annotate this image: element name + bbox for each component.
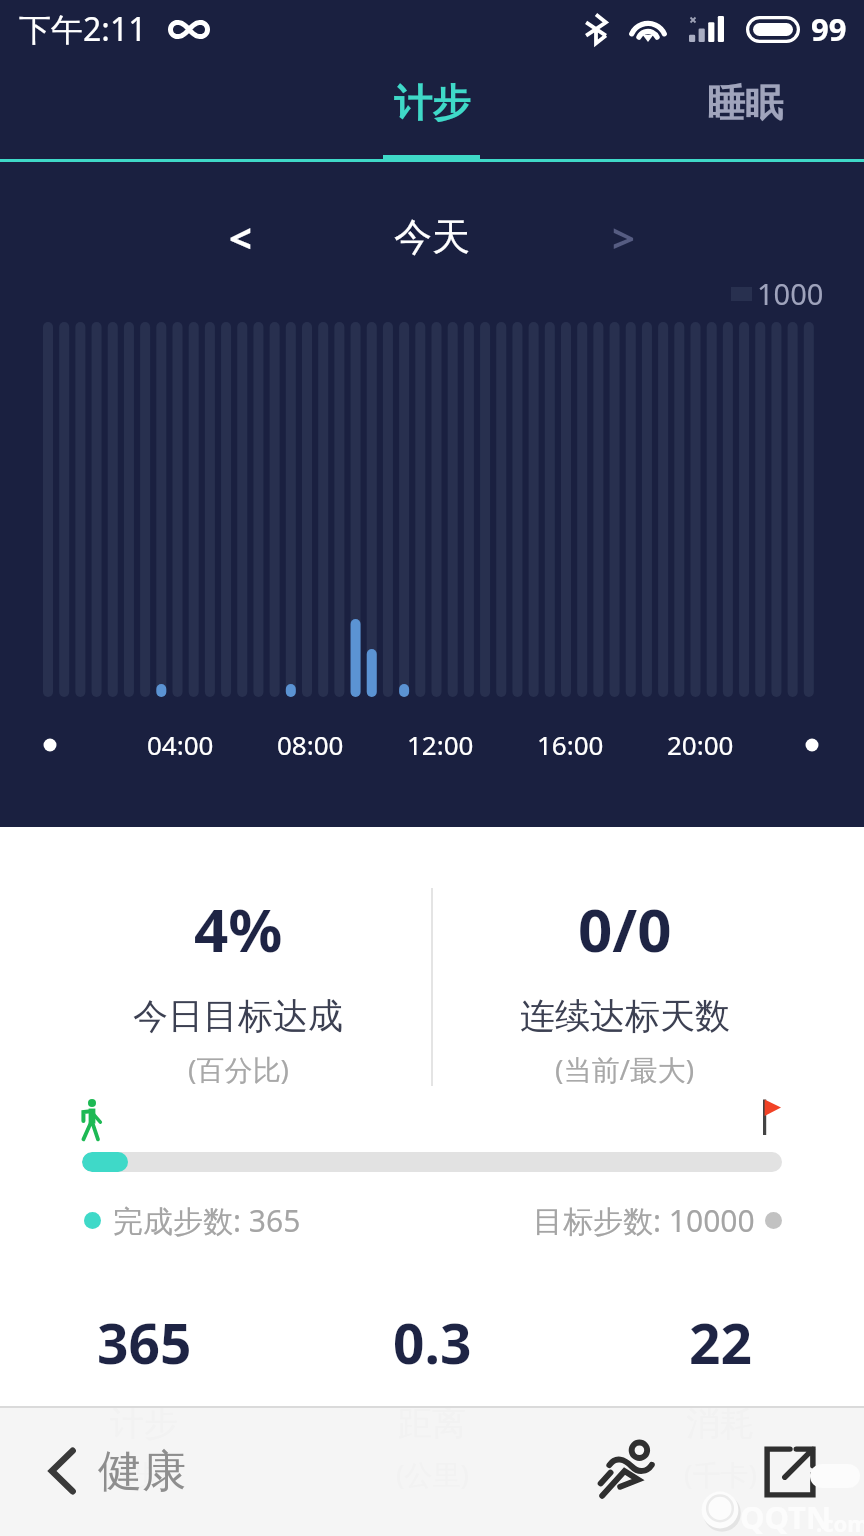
staticText: (步): [122, 1455, 167, 1493]
staticText: 04:00: [147, 727, 214, 762]
staticText: 睡眠: [707, 79, 783, 127]
button[interactable]: Previous day: [205, 202, 275, 272]
staticText: 计步: [110, 1402, 178, 1445]
staticText: <: [229, 210, 252, 264]
staticText: .com: [816, 1508, 864, 1536]
staticText: 22: [689, 1305, 752, 1380]
other: Back: [48, 1448, 76, 1494]
button[interactable]: 睡眠: [645, 57, 845, 160]
staticText: 20:00: [667, 727, 734, 762]
button[interactable]: Open external link: [755, 1437, 825, 1507]
staticText: 距离: [398, 1402, 466, 1445]
staticText: 完成步数: 365: [113, 1200, 301, 1241]
staticText: 08:00: [277, 727, 344, 762]
staticText: 消耗: [686, 1402, 754, 1445]
button[interactable]: Run: [592, 1436, 662, 1506]
staticText: 下午2:11: [19, 7, 147, 51]
staticText: 连续达标天数: [520, 994, 730, 1038]
staticText: 0/0: [578, 888, 672, 970]
staticText: 365: [97, 1305, 192, 1380]
staticText: QQTN: [740, 1496, 832, 1536]
staticText: 1000: [757, 274, 824, 313]
staticText: 今日目标达成: [133, 994, 343, 1038]
button[interactable]: 365: [0, 1305, 288, 1493]
staticText: 12:00: [407, 727, 474, 762]
staticText: 健康: [98, 1444, 186, 1499]
staticText: 4%: [194, 888, 283, 970]
button[interactable]: Next day: [588, 202, 658, 272]
staticText: 99: [811, 8, 847, 50]
staticText: 目标步数: 10000: [533, 1200, 755, 1241]
staticText: 0.3: [393, 1305, 472, 1380]
staticText: 今天: [394, 213, 470, 261]
staticText: >: [612, 210, 635, 264]
button[interactable]: 计步: [332, 57, 532, 160]
staticText: (当前/最大): [555, 1050, 695, 1088]
button[interactable]: 22: [576, 1305, 864, 1493]
button[interactable]: 0.3: [288, 1305, 576, 1493]
button[interactable]: Back: [48, 1434, 186, 1508]
staticText: 16:00: [537, 727, 604, 762]
staticText: 计步: [394, 79, 470, 127]
staticText: (百分比): [188, 1050, 289, 1088]
